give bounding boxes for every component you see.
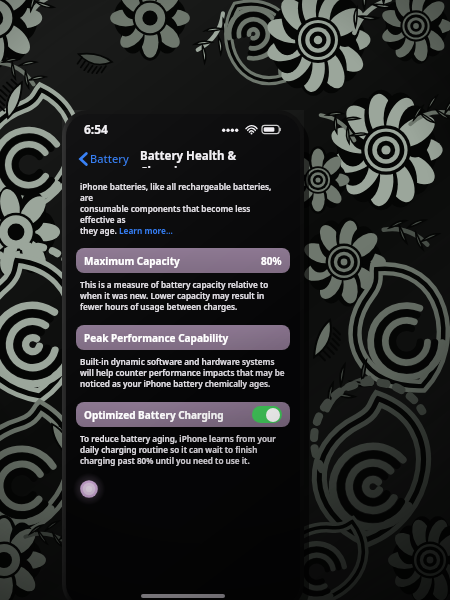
staticText: This is a measure of battery capacity re…: [80, 279, 286, 312]
button[interactable]: Optimized Battery Charging: [76, 402, 290, 427]
staticText: 80%: [261, 254, 282, 268]
staticText: Optimized Battery Charging: [84, 408, 224, 422]
button[interactable]: Peak Performance Capability: [76, 325, 290, 350]
button[interactable]: Maximum Capacity: [76, 248, 290, 273]
button[interactable]: Learn more...: [119, 225, 173, 236]
staticText: Battery Health & Charging: [140, 148, 289, 168]
staticText: Built-in dynamic software and hardware s…: [80, 356, 286, 389]
staticText: Learn more...: [119, 225, 173, 236]
staticText: Maximum Capacity: [84, 254, 180, 268]
staticText: Peak Performance Capability: [84, 331, 229, 345]
staticText: Battery: [90, 151, 129, 166]
staticText: consumable components that become less e…: [80, 203, 286, 225]
staticText: 6:54: [84, 121, 108, 137]
button[interactable]: Optimized Battery Charging toggle: [252, 406, 282, 423]
staticText: they age.: [80, 225, 119, 236]
button[interactable]: Battery: [77, 149, 131, 168]
staticText: To reduce battery aging, iPhone learns f…: [80, 433, 286, 466]
staticText: iPhone batteries, like all rechargeable …: [80, 181, 286, 203]
